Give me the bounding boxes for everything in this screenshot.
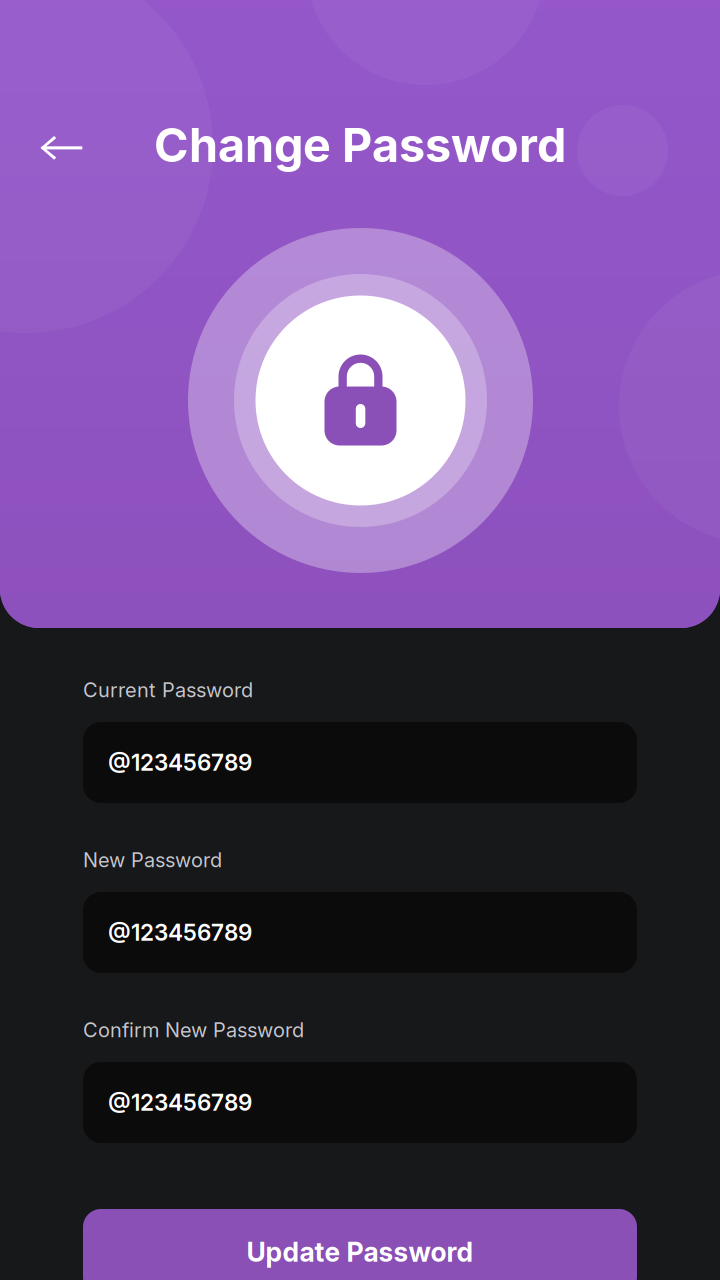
staticText: @123456789: [108, 749, 252, 776]
staticText: Change Password: [154, 117, 566, 173]
staticText: @123456789: [108, 1089, 252, 1116]
button[interactable]: @123456789: [83, 1062, 637, 1143]
staticText: New Password: [83, 848, 222, 872]
button[interactable]: Back: [31, 117, 93, 179]
staticText: Confirm New Password: [83, 1018, 304, 1042]
button[interactable]: @123456789: [83, 892, 637, 973]
staticText: @123456789: [108, 919, 252, 946]
button[interactable]: Update Password: [83, 1209, 637, 1280]
staticText: Current Password: [83, 678, 253, 702]
button[interactable]: @123456789: [83, 722, 637, 803]
staticText: Update Password: [246, 1236, 473, 1268]
